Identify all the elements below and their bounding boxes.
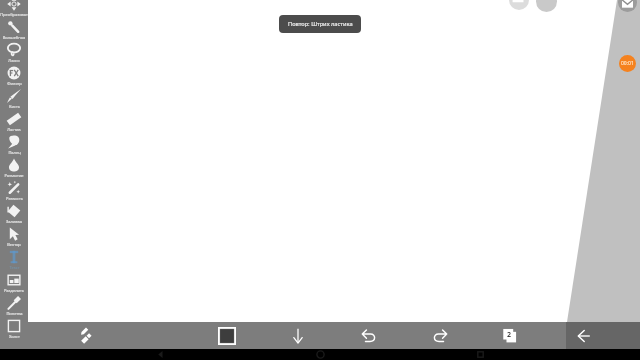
staticText: Размытие (4, 173, 24, 178)
button[interactable]: Redo (420, 322, 460, 349)
button[interactable]: Colour (207, 322, 247, 349)
button[interactable] (0, 291, 28, 314)
button[interactable] (0, 176, 28, 199)
staticText: 00:01 (621, 60, 634, 67)
staticText: Разделить (4, 288, 24, 293)
staticText: Лассо (8, 58, 20, 63)
button[interactable]: Layers (490, 322, 530, 349)
staticText: Палец (8, 150, 21, 155)
button[interactable] (0, 130, 28, 153)
button[interactable]: Recents (466, 349, 494, 360)
button[interactable] (0, 38, 28, 61)
button[interactable]: Tools (65, 322, 105, 349)
button[interactable] (0, 84, 28, 107)
button[interactable] (0, 153, 28, 176)
button[interactable] (0, 268, 28, 291)
staticText: Текст (9, 265, 20, 270)
staticText: Вектор (7, 242, 21, 247)
button[interactable] (0, 199, 28, 222)
staticText: Резкость (6, 196, 23, 201)
button[interactable]: Messages (618, 0, 637, 12)
staticText: Кисть (9, 104, 20, 109)
staticText: Повтор: Штрих ластика (288, 20, 353, 28)
staticText: Волшебная палочка (0, 35, 28, 40)
staticText: Фильтр (7, 81, 22, 86)
button[interactable]: Opacity (536, 0, 557, 12)
button[interactable]: Brush size (509, 0, 529, 10)
staticText: Преобразовать (0, 12, 28, 17)
button[interactable] (0, 61, 28, 84)
staticText: 2 (507, 330, 512, 340)
button[interactable] (0, 0, 28, 15)
button[interactable] (0, 222, 28, 245)
button[interactable] (0, 107, 28, 130)
button[interactable]: Back (565, 322, 605, 349)
button[interactable]: Import (278, 322, 318, 349)
button[interactable] (0, 15, 28, 38)
staticText: Ластик (7, 127, 21, 132)
button[interactable]: Home (306, 349, 334, 360)
button[interactable] (0, 314, 28, 337)
button[interactable]: Undo (349, 322, 389, 349)
button[interactable]: Back (146, 349, 174, 360)
button[interactable]: Timer (619, 55, 636, 72)
staticText: Холст (9, 334, 20, 339)
button[interactable]: Повтор: Штрих ластика (279, 15, 361, 33)
staticText: Заливка (6, 219, 22, 224)
button[interactable] (0, 245, 28, 268)
staticText: Пипетка (6, 311, 23, 316)
